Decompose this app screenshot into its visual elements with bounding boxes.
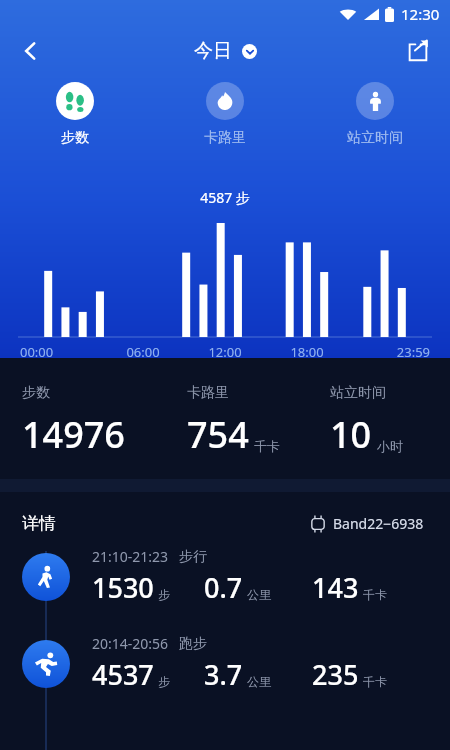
staticText: 00:00 [20,343,102,358]
button[interactable]: 步数 [0,78,150,147]
staticText: 20:14-20:56 [92,634,169,653]
staticText: 1530 [92,569,154,606]
staticText: 步 [158,674,170,689]
staticText: 详情 [22,513,56,534]
staticText: 步数 [22,384,50,402]
staticText: 卡路里 [187,384,229,402]
staticText: 小时 [377,438,403,454]
staticText: 千卡 [363,587,387,602]
staticText: 12:00 [184,343,266,358]
button[interactable]: Share [398,31,438,71]
staticText: 18:00 [266,343,348,358]
staticText: 4537 [92,656,154,693]
button[interactable]: Back [10,30,52,72]
button[interactable]: 站立时间 [330,384,403,459]
staticText: 06:00 [102,343,184,358]
button[interactable]: 21:10-21:23 [0,547,450,606]
staticText: 235 [312,656,359,693]
button[interactable]: 卡路里 [187,384,330,459]
staticText: 754 [187,410,249,459]
staticText: 千卡 [254,438,280,454]
staticText: 12:30 [401,4,440,24]
staticText: 卡路里 [204,129,246,147]
button[interactable]: 站立时间 [300,78,450,147]
button[interactable]: 20:14-20:56 [0,634,450,693]
button[interactable]: Band22−6938 [307,510,428,537]
staticText: 步数 [61,129,89,147]
staticText: 21:10-21:23 [92,547,169,566]
staticText: 站立时间 [347,129,403,147]
staticText: 143 [312,569,359,606]
staticText: 23:59 [348,343,430,358]
staticText: 14976 [22,410,125,459]
button[interactable]: 今日 [194,39,257,63]
staticText: 0.7 [204,569,243,606]
staticText: 公里 [247,674,271,689]
staticText: 今日 [194,39,232,63]
staticText: 跑步 [179,635,207,653]
staticText: 步行 [179,548,207,566]
staticText: 10 [330,410,372,459]
staticText: 3.7 [204,656,243,693]
button[interactable]: 卡路里 [150,78,300,147]
button[interactable]: 步数 [22,384,187,459]
staticText: 4587 步 [0,188,450,207]
staticText: 千卡 [363,674,387,689]
staticText: Band22−6938 [333,514,424,533]
staticText: 步 [158,587,170,602]
staticText: 公里 [247,587,271,602]
staticText: 站立时间 [330,384,386,402]
